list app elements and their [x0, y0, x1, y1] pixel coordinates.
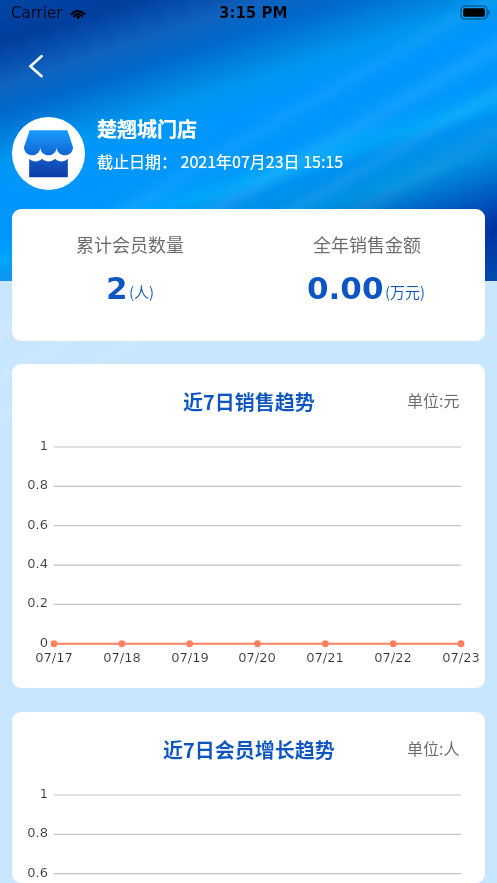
staticText: 07/17	[24, 650, 84, 665]
button[interactable]: Back	[12, 47, 52, 87]
button[interactable]: 近7日销售趋势	[12, 364, 485, 688]
staticText: 07/22	[363, 650, 423, 665]
staticText: 1	[12, 786, 48, 801]
staticText: 0.6	[12, 865, 48, 880]
staticText: 近7日会员增长趋势	[163, 735, 335, 764]
staticText: 07/19	[160, 650, 220, 665]
staticText: 07/20	[227, 650, 287, 665]
staticText: 2	[106, 270, 128, 306]
button[interactable]: 近7日会员增长趋势	[12, 712, 485, 883]
staticText: 单位:人	[407, 736, 460, 759]
staticText: 0	[12, 635, 48, 650]
staticText: 07/18	[92, 650, 152, 665]
staticText: 07/21	[295, 650, 355, 665]
staticText: (人)	[129, 281, 155, 303]
staticText: 3:15 PM	[219, 4, 288, 21]
staticText: 全年销售金额	[313, 231, 421, 257]
staticText: (万元)	[385, 281, 426, 303]
staticText: 0.4	[12, 556, 48, 571]
staticText: 07/23	[431, 650, 485, 665]
staticText: 楚翘城门店	[97, 114, 197, 143]
staticText: 0.00	[307, 270, 384, 306]
staticText: 0.6	[12, 517, 48, 532]
staticText: Carrier	[11, 4, 63, 21]
staticText: 截止日期： 2021年07月23日 15:15	[97, 149, 344, 172]
staticText: 单位:元	[407, 388, 460, 411]
button[interactable]: 累计会员数量	[12, 209, 485, 341]
staticText: 近7日销售趋势	[183, 387, 315, 416]
staticText: 0.8	[12, 477, 48, 492]
staticText: 累计会员数量	[76, 231, 184, 257]
staticText: 1	[12, 438, 48, 453]
staticText: 0.8	[12, 825, 48, 840]
staticText: 0.2	[12, 595, 48, 610]
